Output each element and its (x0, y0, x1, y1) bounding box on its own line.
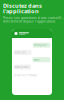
staticText: Bonjour ! (34, 43, 48, 47)
staticText: l'application (3, 7, 39, 15)
staticText: Posez vos questions à nos conseillers (3, 16, 64, 20)
staticText: Merci (34, 58, 40, 61)
staticText: directement depuis l'application. (3, 19, 56, 24)
staticText: Bien sûr (15, 51, 26, 54)
staticText: Avec plaisir (15, 65, 29, 69)
staticText: Ecrivez votre message (14, 74, 38, 77)
staticText: Discutez dans (3, 2, 42, 9)
